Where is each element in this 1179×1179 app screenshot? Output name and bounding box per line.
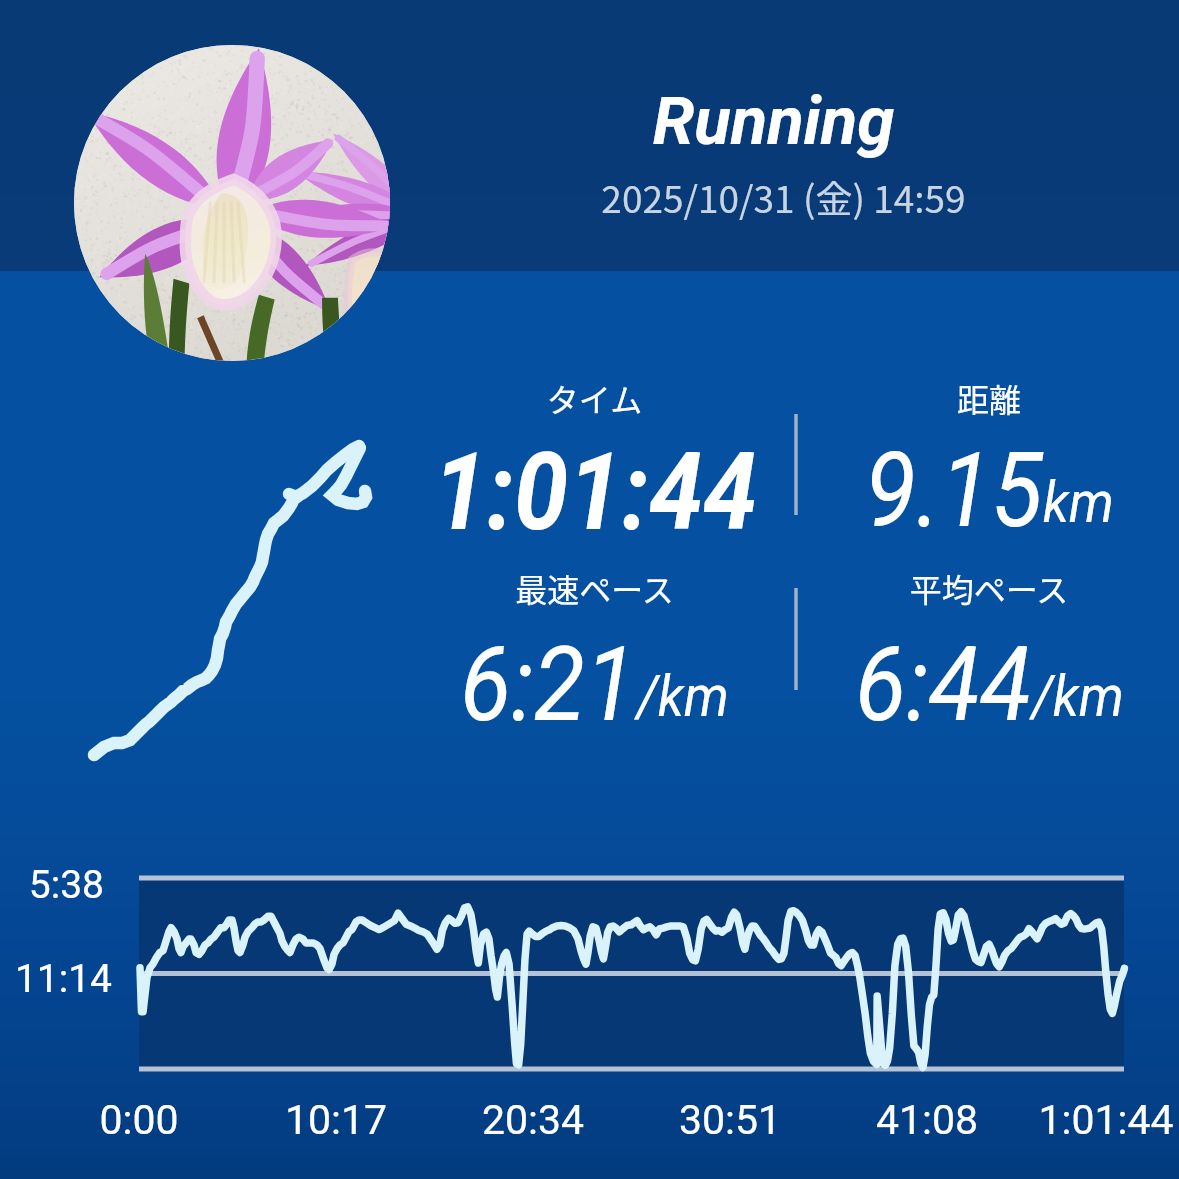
staticText: /km <box>1032 662 1124 731</box>
staticText: 6:21 <box>460 624 637 745</box>
staticText: km <box>1043 468 1114 537</box>
button[interactable]: Running <box>390 40 1179 230</box>
button[interactable] <box>397 367 792 537</box>
staticText: 9.15 <box>865 430 1043 551</box>
button[interactable]: Activity photo <box>74 45 390 361</box>
staticText: 2025/10/31 (金) 14:59 <box>389 170 1178 224</box>
staticText: 0:00 <box>0 1096 299 1144</box>
staticText: 1:01:44 <box>433 430 757 555</box>
staticText: 30:51 <box>570 1096 890 1144</box>
button[interactable] <box>797 557 1179 727</box>
staticText: 最速ペース <box>397 565 792 611</box>
staticText: 5:38 <box>0 862 104 908</box>
staticText: 10:17 <box>176 1096 496 1144</box>
staticText: 20:34 <box>373 1096 693 1144</box>
staticText: Running <box>379 82 1168 161</box>
staticText: 41:08 <box>767 1096 1087 1144</box>
staticText: 距離 <box>797 375 1179 421</box>
staticText: タイム <box>397 375 792 421</box>
staticText: /km <box>637 662 729 731</box>
button[interactable] <box>397 557 792 727</box>
staticText: 1:01:44 <box>946 1096 1179 1144</box>
staticText: 6:44 <box>855 624 1032 745</box>
staticText: 平均ペース <box>797 565 1179 611</box>
staticText: 11:14 <box>0 956 112 1002</box>
button[interactable] <box>797 367 1179 537</box>
